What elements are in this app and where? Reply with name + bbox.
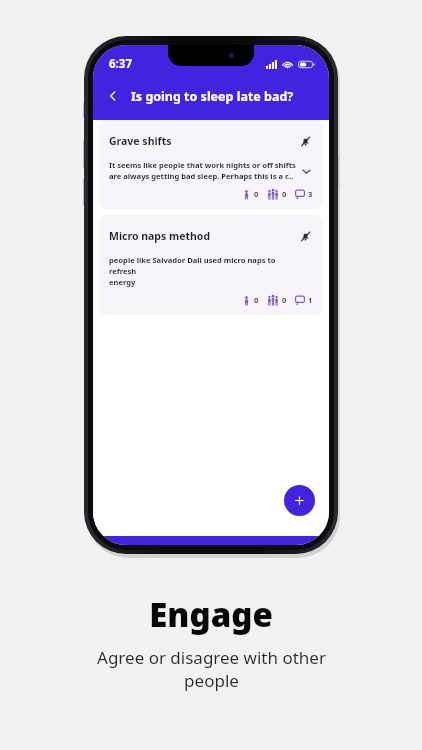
button[interactable]: 3 <box>295 189 313 199</box>
button[interactable]: 0 <box>267 188 287 200</box>
button[interactable]: 0 <box>242 189 259 199</box>
button[interactable]: Grave shifts <box>99 120 323 209</box>
staticText: Agree or disagree with other people <box>97 646 326 692</box>
button[interactable]: Mute notifications <box>295 226 315 246</box>
staticText: It seems like people that work nights or… <box>109 160 296 181</box>
staticText: 3 <box>308 189 313 199</box>
staticText: Is going to sleep late bad? <box>131 88 294 105</box>
button[interactable]: Micro naps method <box>99 215 323 315</box>
staticText: Engage <box>149 592 273 637</box>
staticText: 6:37 <box>109 56 132 72</box>
staticText: 0 <box>254 295 259 305</box>
button[interactable]: Back <box>99 82 127 110</box>
staticText: 0 <box>282 189 287 199</box>
button[interactable]: 0 <box>242 295 259 305</box>
button[interactable]: Expand <box>297 162 315 180</box>
button[interactable]: Mute notifications <box>295 131 315 151</box>
staticText: 0 <box>254 189 259 199</box>
staticText: Grave shifts <box>109 134 172 148</box>
button[interactable]: Add post <box>284 485 315 516</box>
button[interactable]: 0 <box>267 294 287 306</box>
button[interactable]: 1 <box>295 295 313 305</box>
staticText: 1 <box>308 295 313 305</box>
staticText: 0 <box>282 295 287 305</box>
staticText: Micro naps method <box>109 229 211 243</box>
staticText: people like Salvador Dali used micro nap… <box>109 255 297 287</box>
